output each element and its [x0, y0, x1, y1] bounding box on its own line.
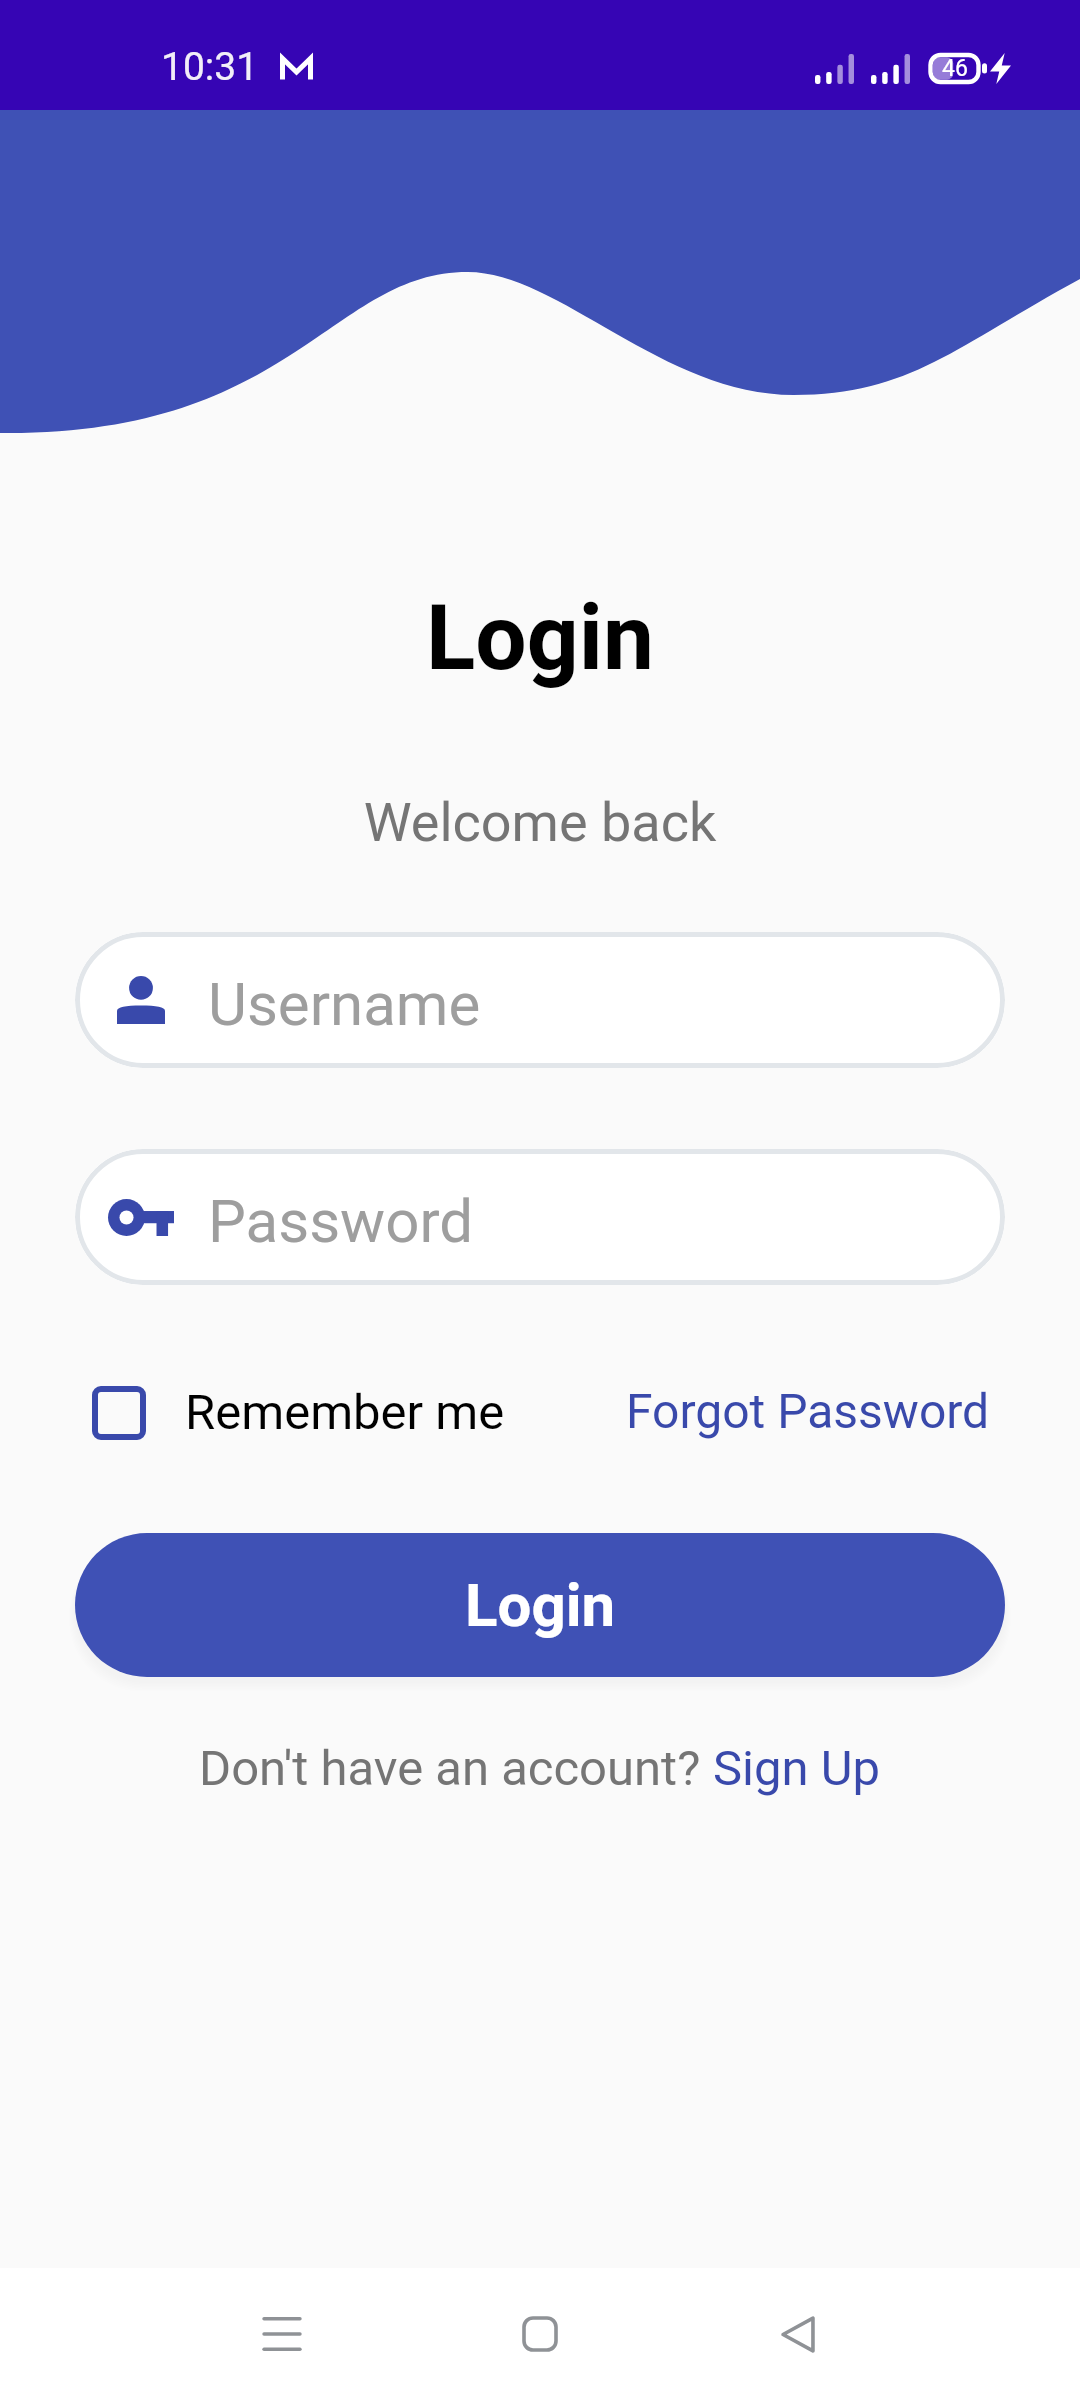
staticText: Password: [208, 1186, 474, 1256]
staticText: Username: [208, 969, 481, 1039]
staticText: Don't have an account?: [199, 1740, 713, 1797]
button[interactable]: Remember me: [92, 1384, 505, 1441]
staticText: Forgot Password: [626, 1383, 990, 1439]
button[interactable]: Home: [480, 2274, 600, 2394]
button[interactable]: Login: [75, 1533, 1005, 1677]
staticText: Login: [465, 1570, 616, 1640]
staticText: 46: [935, 55, 975, 82]
button[interactable]: Forgot Password: [626, 1383, 990, 1439]
button[interactable]: Recent apps: [222, 2274, 342, 2394]
button[interactable]: Sign Up: [713, 1740, 881, 1797]
button[interactable]: Username: [75, 932, 1005, 1068]
staticText: Welcome back: [0, 791, 1080, 854]
button[interactable]: Password: [75, 1149, 1005, 1285]
staticText: Remember me: [185, 1384, 505, 1441]
staticText: Login: [0, 585, 1080, 692]
button[interactable]: Back: [738, 2274, 858, 2394]
staticText: 10:31: [161, 44, 259, 90]
